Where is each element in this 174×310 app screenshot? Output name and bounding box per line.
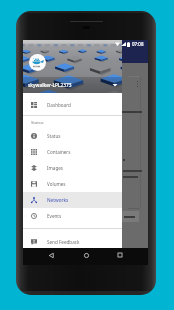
button[interactable]: Volumes [23,176,122,192]
button[interactable]: Home [79,248,93,262]
staticText: Networks [47,197,69,203]
staticText: skywalker-LPL2373 [28,82,72,89]
button[interactable]: Events [23,208,122,224]
button[interactable]: Images [23,160,122,176]
staticText: Dashboard [47,102,71,108]
button[interactable]: Recents [113,248,127,262]
button[interactable]: Status [23,128,122,144]
button[interactable]: Back [44,248,58,262]
button[interactable]: Show accounts [112,82,118,88]
staticText: Images [47,165,64,171]
button[interactable]: Send Feedback [23,234,122,249]
button[interactable]: Networks [23,192,122,208]
staticText: Status [47,133,61,139]
button[interactable]: Dashboard [23,97,122,112]
staticText: Containers [47,149,71,155]
staticText: Send Feedback [47,239,80,245]
button[interactable]: Containers [23,144,122,160]
staticText: 07:08 [132,41,144,47]
staticText: Volumes [47,181,66,187]
button[interactable]: Docker account [29,54,46,71]
staticText: Events [47,213,62,219]
button[interactable] [119,211,139,222]
staticText: Status [31,120,44,126]
